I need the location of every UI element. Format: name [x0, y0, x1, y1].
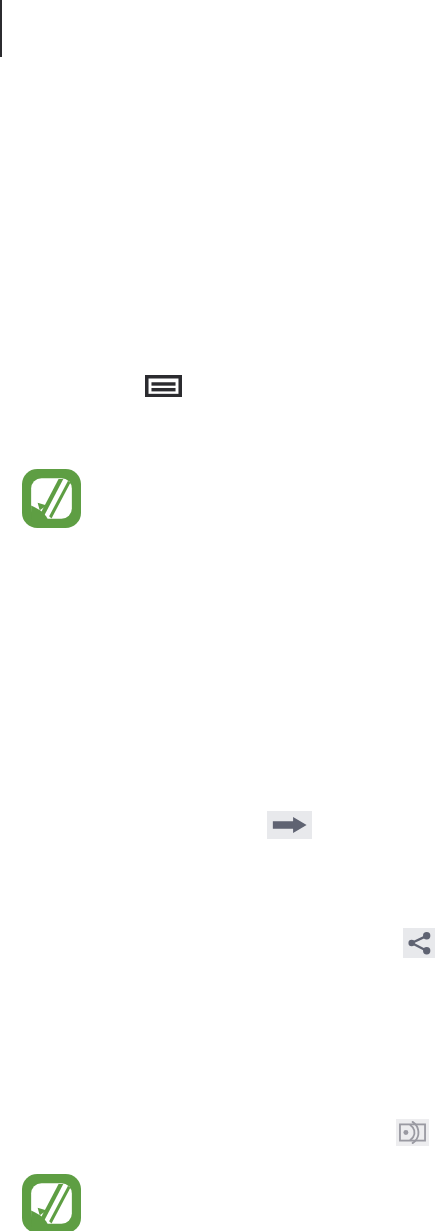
button[interactable]: Menu key	[145, 375, 182, 397]
button[interactable]: S Note	[22, 469, 81, 528]
button[interactable]: S Note	[22, 1174, 81, 1231]
button[interactable]: Next	[267, 811, 312, 839]
button[interactable]: Screen Mirroring	[396, 1119, 429, 1146]
button[interactable]: Share	[403, 928, 435, 958]
